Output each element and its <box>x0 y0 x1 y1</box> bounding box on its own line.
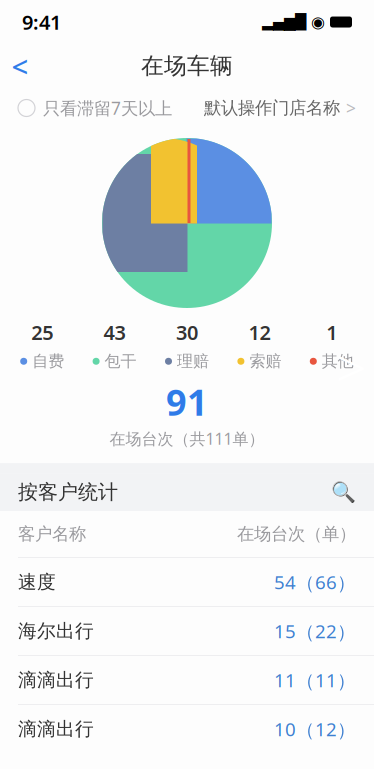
button[interactable]: 滴滴出行 <box>0 656 374 705</box>
staticText: 9:41 <box>22 9 61 35</box>
staticText: < <box>11 46 28 85</box>
staticText: 滴滴出行 <box>18 718 94 740</box>
staticText: 索赔 <box>249 351 281 371</box>
staticText: 91 <box>166 378 208 426</box>
staticText: 按客户统计 <box>18 480 118 504</box>
staticText: 43 <box>104 319 126 345</box>
staticText: 12 <box>248 319 270 345</box>
staticText: 54（66） <box>274 570 356 594</box>
staticText: 1 <box>326 319 337 345</box>
button[interactable]: Search <box>0 473 374 511</box>
staticText: 其他 <box>322 351 354 371</box>
staticText: 自费 <box>32 351 64 371</box>
staticText: 在场车辆 <box>141 52 233 80</box>
staticText: 在场台次（共111单） <box>109 428 264 449</box>
staticText: 🔍 <box>331 481 356 503</box>
button[interactable]: 滴滴出行 <box>0 705 374 753</box>
staticText: 30 <box>176 319 198 345</box>
staticText: 11（11） <box>274 668 356 692</box>
staticText: 10（12） <box>274 717 356 741</box>
staticText: 客户名称 <box>18 523 86 545</box>
staticText: 理赔 <box>177 351 209 371</box>
button[interactable]: Back <box>0 44 40 88</box>
staticText: 25 <box>31 319 53 345</box>
staticText: > <box>336 332 366 402</box>
staticText: 滴滴出行 <box>18 669 94 691</box>
button[interactable]: 速度 <box>0 558 374 607</box>
button[interactable]: 只看滞留7天以上 <box>18 96 172 119</box>
staticText: 速度 <box>18 571 56 593</box>
staticText: 包干 <box>105 351 137 371</box>
button[interactable]: 默认操作门店名称 <box>204 96 356 119</box>
staticText: 在场台次（单） <box>237 523 356 545</box>
staticText: ▂▄▆█ <box>262 14 306 30</box>
staticText: 默认操作门店名称 <box>204 97 340 119</box>
staticText: 只看滞留7天以上 <box>43 96 172 119</box>
staticText: > <box>346 96 356 119</box>
staticText: ◉ <box>311 13 325 31</box>
button[interactable]: 海尔出行 <box>0 607 374 656</box>
staticText: 15（22） <box>274 619 356 643</box>
staticText: 海尔出行 <box>18 620 94 642</box>
